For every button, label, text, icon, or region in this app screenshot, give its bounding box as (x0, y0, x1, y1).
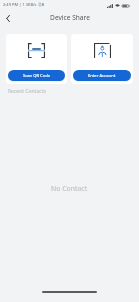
staticText: Scan QR Code (23, 73, 51, 79)
button[interactable]: Scan QR Code (8, 70, 65, 81)
button[interactable]: Back (2, 12, 14, 24)
button[interactable]: Enter Account (71, 34, 133, 84)
staticText: Enter Account (88, 73, 116, 79)
staticText: No Contact (51, 184, 88, 193)
button[interactable]: Enter Account (73, 70, 131, 81)
staticText: Recent Contacts (8, 88, 46, 95)
staticText: Device Share (50, 13, 90, 22)
staticText: 2:49 PM | 1.3KB/s (3, 2, 37, 7)
button[interactable]: Scan QR Code (6, 34, 67, 84)
